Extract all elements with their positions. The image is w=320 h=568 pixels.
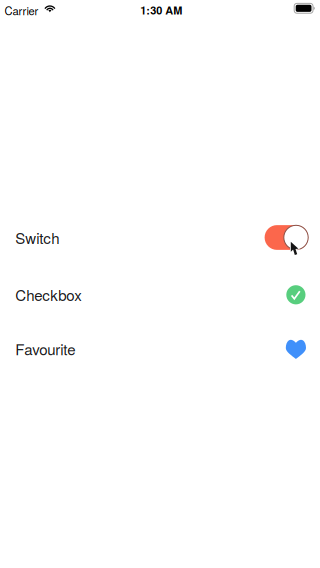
button[interactable]: Checkbox <box>0 257 320 311</box>
staticText: Checkbox <box>15 284 82 305</box>
staticText: 1:30 AM <box>140 2 182 18</box>
button[interactable]: Switch <box>0 257 320 311</box>
staticText: Switch <box>15 227 59 248</box>
staticText: Favourite <box>15 338 75 360</box>
staticText: Carrier <box>5 2 39 18</box>
button[interactable]: Favourite <box>0 257 320 311</box>
